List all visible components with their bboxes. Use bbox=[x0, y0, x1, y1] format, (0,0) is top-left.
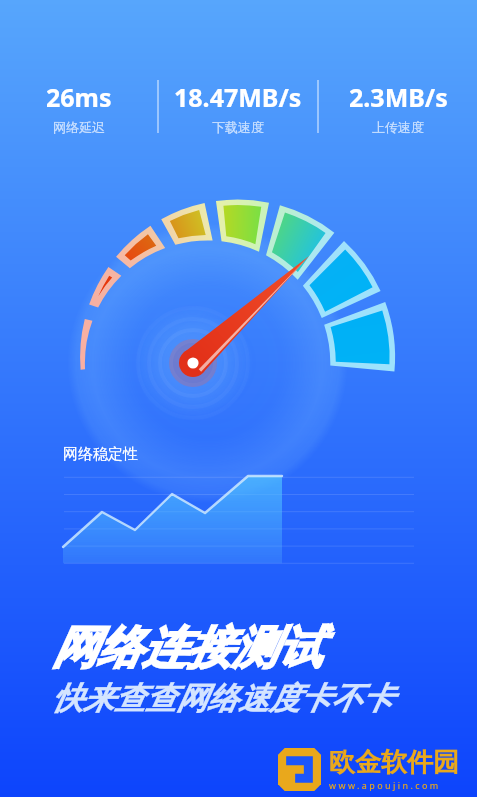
staticText: 26ms bbox=[46, 80, 112, 114]
button[interactable]: 26ms bbox=[0, 80, 157, 135]
staticText: 欧金软件园 bbox=[329, 746, 459, 779]
button[interactable]: 2.3MB/s bbox=[319, 80, 477, 135]
staticText: 18.47MB/s bbox=[174, 80, 302, 114]
staticText: 2.3MB/s bbox=[349, 80, 448, 114]
staticText: 网络延迟 bbox=[53, 119, 105, 135]
staticText: 快来查查网络速度卡不卡 bbox=[52, 679, 393, 718]
staticText: 网络连接测试 bbox=[52, 620, 322, 677]
button[interactable]: 18.47MB/s bbox=[159, 80, 317, 135]
staticText: 网络稳定性 bbox=[63, 445, 138, 464]
staticText: 下载速度 bbox=[212, 119, 264, 135]
staticText: 上传速度 bbox=[372, 119, 424, 135]
staticText: www.apoujin.com bbox=[329, 779, 441, 791]
